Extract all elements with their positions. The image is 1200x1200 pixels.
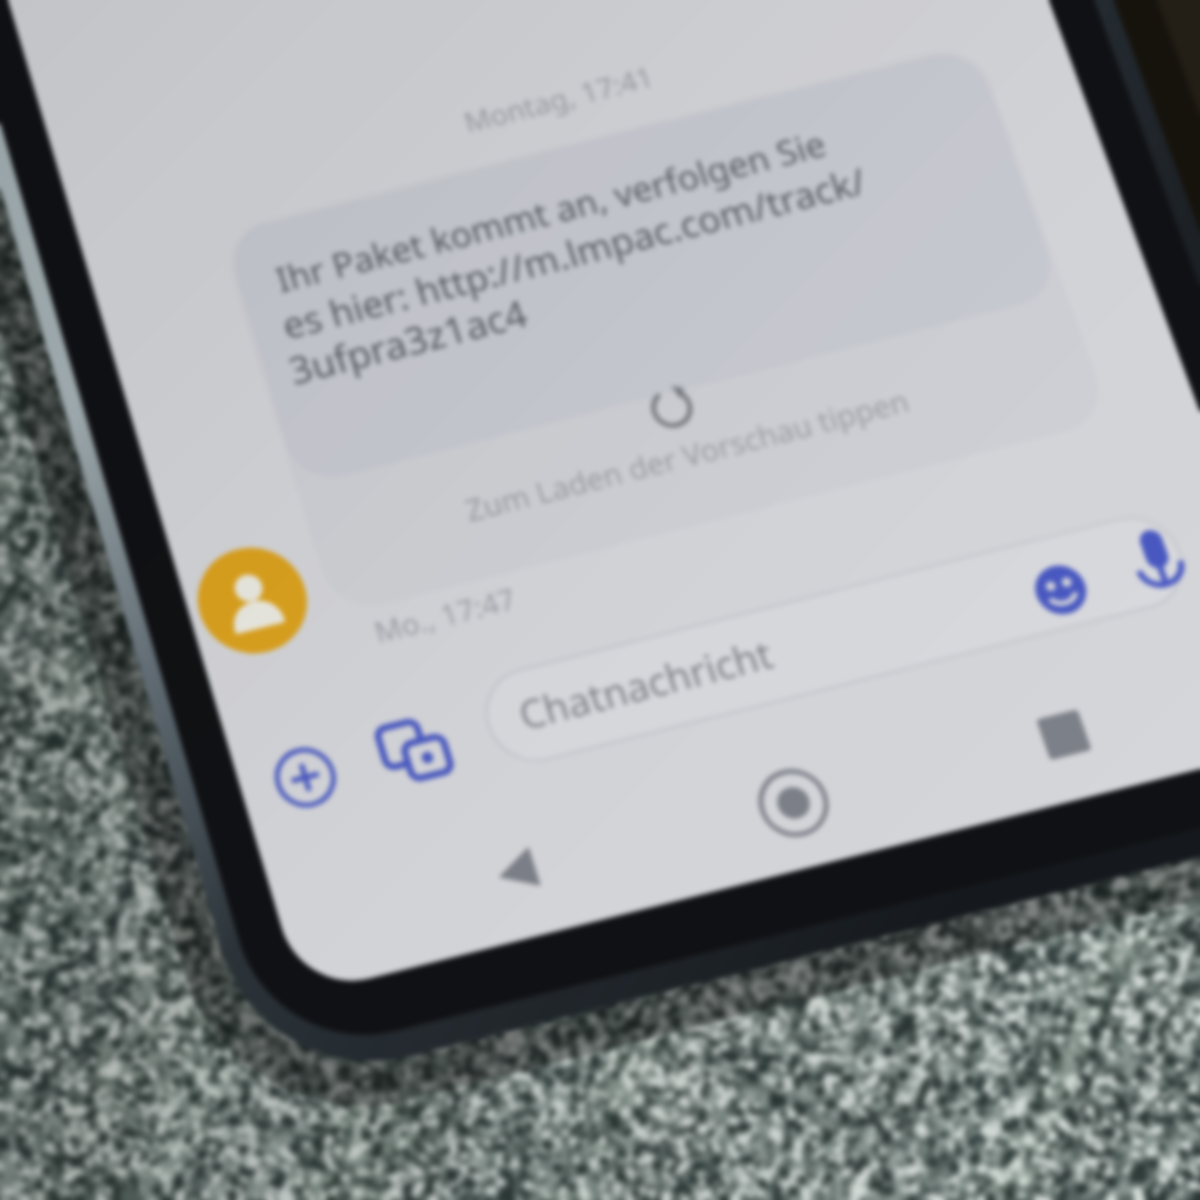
button[interactable]: Chat conversation [0, 0, 1200, 1200]
